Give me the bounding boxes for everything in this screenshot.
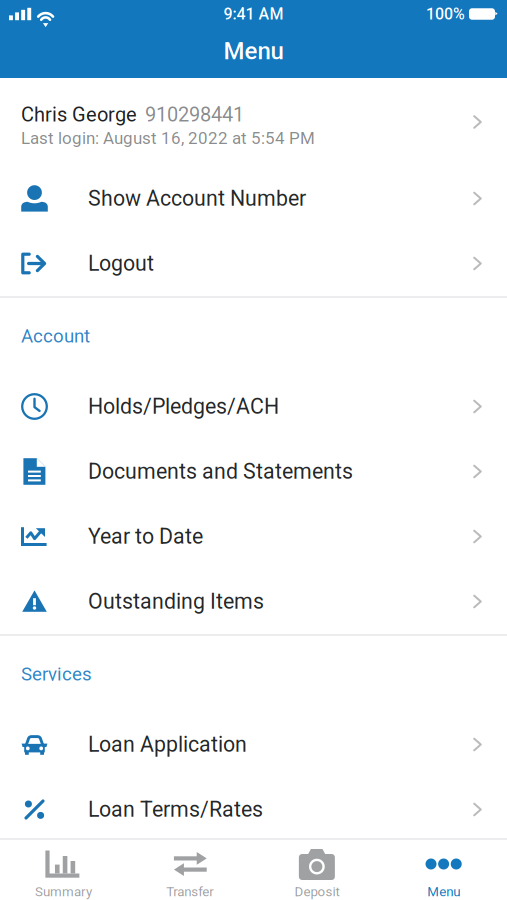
button[interactable]: Outstanding Items — [0, 569, 507, 634]
staticText: Summary — [35, 884, 92, 900]
staticText: Outstanding Items — [88, 589, 264, 614]
staticText: Loan Terms/Rates — [88, 797, 263, 822]
staticText: 100% — [426, 5, 465, 23]
staticText: 910298441 — [145, 103, 244, 126]
staticText: Loan Application — [88, 732, 247, 757]
staticText: Transfer — [166, 884, 214, 900]
button[interactable]: Summary — [0, 839, 127, 900]
button[interactable]: Year to Date — [0, 504, 507, 569]
staticText: 9:41 AM — [223, 5, 283, 23]
staticText: Show Account Number — [88, 186, 306, 211]
staticText: Logout — [88, 251, 154, 276]
staticText: Holds/Pledges/ACH — [88, 394, 279, 419]
button[interactable]: Show Account Number — [0, 166, 507, 231]
staticText: Menu — [223, 37, 283, 65]
staticText: Account — [21, 325, 90, 347]
staticText: Services — [21, 663, 92, 685]
staticText: Last login: August 16, 2022 at 5:54 PM — [21, 128, 315, 148]
button[interactable]: Logout — [0, 231, 507, 296]
button[interactable]: Transfer — [127, 839, 254, 900]
button[interactable]: Menu — [380, 839, 507, 900]
button[interactable]: Loan Terms/Rates — [0, 777, 507, 842]
staticText: Chris George — [21, 103, 137, 126]
staticText: Documents and Statements — [88, 459, 353, 484]
staticText: Year to Date — [88, 524, 203, 549]
staticText: Menu — [427, 884, 460, 900]
button[interactable]: Loan Application — [0, 712, 507, 777]
button[interactable]: Documents and Statements — [0, 439, 507, 504]
button[interactable]: Chris George — [0, 78, 507, 166]
button[interactable]: Deposit — [253, 839, 380, 900]
staticText: Deposit — [294, 884, 339, 900]
button[interactable]: Holds/Pledges/ACH — [0, 374, 507, 439]
